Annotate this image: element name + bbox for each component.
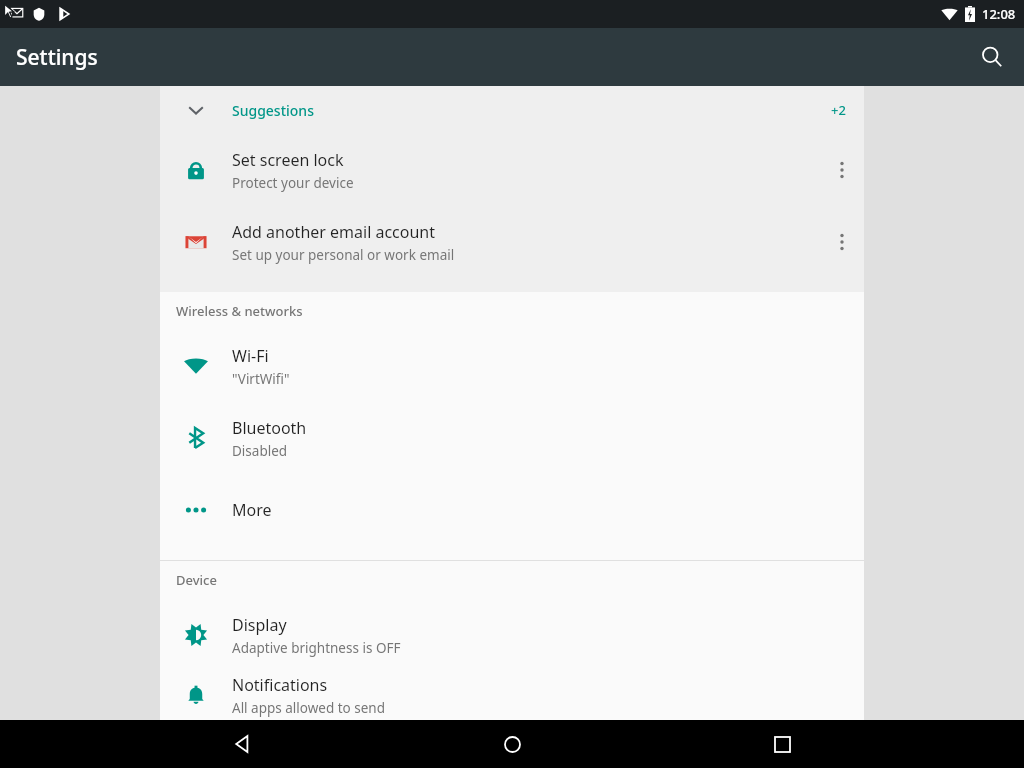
- staticText: Set up your personal or work email: [232, 246, 455, 264]
- staticText: +2: [831, 101, 846, 119]
- staticText: "VirtWifi": [232, 370, 290, 388]
- button[interactable]: More options: [820, 134, 864, 206]
- staticText: Settings: [16, 43, 98, 72]
- staticText: Bluetooth: [232, 417, 307, 439]
- staticText: Protect your device: [232, 174, 354, 192]
- button[interactable]: Back: [214, 720, 270, 768]
- staticText: Set screen lock: [232, 149, 344, 171]
- button[interactable]: More: [160, 474, 864, 546]
- button[interactable]: Add another email account: [160, 206, 864, 278]
- staticText: Add another email account: [232, 221, 436, 243]
- button[interactable]: Wi-Fi: [160, 330, 864, 402]
- staticText: All apps allowed to send: [232, 699, 386, 717]
- button[interactable]: Suggestions: [160, 86, 864, 134]
- button[interactable]: Home: [484, 720, 540, 768]
- button[interactable]: Notifications: [160, 671, 864, 720]
- button[interactable]: Recent apps: [754, 720, 810, 768]
- button[interactable]: Search: [968, 33, 1016, 81]
- staticText: Adaptive brightness is OFF: [232, 639, 401, 657]
- button[interactable]: Set screen lock: [160, 134, 864, 206]
- staticText: Suggestions: [232, 101, 314, 120]
- staticText: Disabled: [232, 442, 288, 460]
- staticText: Wireless & networks: [176, 302, 303, 320]
- staticText: More: [232, 499, 272, 521]
- staticText: Notifications: [232, 674, 328, 696]
- button[interactable]: Display: [160, 599, 864, 671]
- staticText: Device: [176, 571, 217, 589]
- staticText: Display: [232, 614, 287, 636]
- staticText: 12:08: [982, 5, 1016, 23]
- button[interactable]: More options: [820, 206, 864, 278]
- button[interactable]: Bluetooth: [160, 402, 864, 474]
- staticText: Wi-Fi: [232, 345, 269, 367]
